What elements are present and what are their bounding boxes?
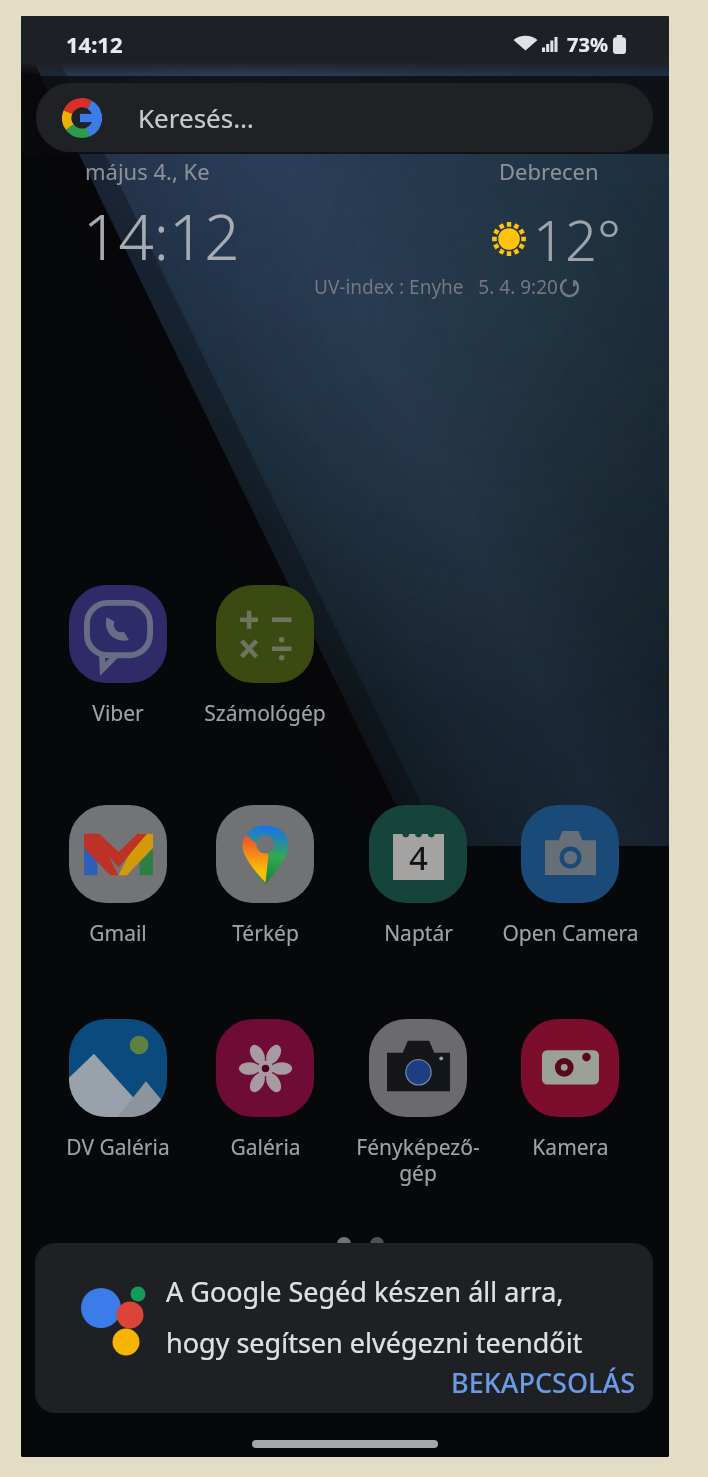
button[interactable]: A Google Segéd készen áll arra, [35,1243,653,1413]
staticText: 14:12 [66,29,123,59]
button[interactable]: 4 [342,805,494,948]
staticText: Gmail [89,919,147,948]
staticText: Naptár [384,919,453,948]
staticText: Galéria [230,1133,301,1162]
button[interactable]: Kamera [494,1019,646,1162]
button[interactable]: Open Camera [494,805,646,948]
staticText: Kamera [532,1133,609,1162]
staticText: Open Camera [502,919,639,948]
staticText: május 4., Ke [85,156,210,186]
staticText: Viber [92,699,144,728]
button[interactable]: Gmail [42,805,194,948]
button[interactable]: DV Galéria [42,1019,194,1162]
staticText: A Google Segéd készen áll arra, [166,1273,564,1310]
button[interactable]: Galéria [189,1019,341,1162]
staticText: 12° [533,201,621,277]
staticText: hogy segítsen elvégezni teendőit [166,1324,583,1361]
staticText: Számológép [204,699,326,728]
staticText: 73% [567,31,608,58]
staticText: DV Galéria [66,1133,170,1162]
staticText: Fényképező- gép [356,1133,480,1187]
staticText: UV-index : Enyhe 5. 4. 9:20 [314,274,558,300]
staticText: Térkép [232,919,299,948]
staticText: 4 [409,835,428,880]
button[interactable]: Fényképező- gép [342,1019,494,1187]
button[interactable]: Térkép [189,805,341,948]
staticText: 14:12 [83,194,240,278]
button[interactable]: Számológép [189,585,341,728]
button[interactable]: Keresés… [36,83,653,152]
button[interactable]: BEKAPCSOLÁS [439,1354,648,1411]
button[interactable]: Viber [42,585,194,728]
staticText: BEKAPCSOLÁS [451,1364,636,1401]
staticText: Keresés… [138,100,254,135]
staticText: Debrecen [499,156,599,186]
